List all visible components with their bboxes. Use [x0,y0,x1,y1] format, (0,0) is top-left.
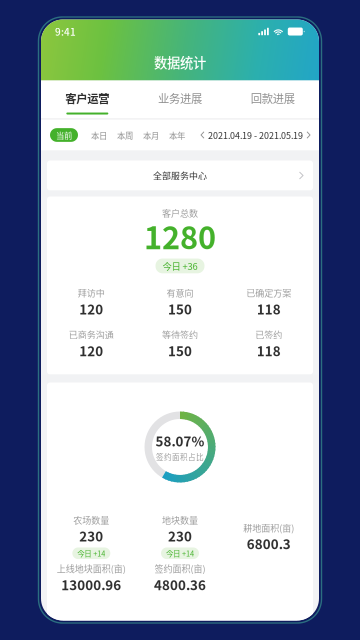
button[interactable]: 本年 [164,127,190,143]
staticText: 120 [79,343,103,358]
staticText: 1280 [144,218,216,253]
button[interactable]: 本周 [112,127,138,143]
staticText: 118 [257,301,281,316]
button[interactable]: 当前 [50,128,78,142]
staticText: 今日 +14 [166,549,194,557]
staticText: 本月 [143,130,159,140]
button[interactable]: 本日 [86,127,112,143]
staticText: 230 [168,528,192,543]
staticText: 拜访中 [78,287,105,298]
staticText: 上线地块面积(亩) [57,563,126,574]
staticText: 签约面积占比 [156,452,204,461]
staticText: 数据统计 [154,54,206,70]
staticText: 本周 [117,130,133,140]
staticText: 已确定方案 [246,287,291,298]
staticText: 有意向 [166,287,193,298]
staticText: 58.07% [155,433,204,448]
staticText: 本年 [169,130,185,140]
staticText: 当前 [56,130,72,140]
staticText: 签约面积(亩) [154,563,205,574]
staticText: 已商务沟通 [69,329,114,340]
staticText: 耕地面积(亩) [243,522,294,533]
staticText: 2021.04.19 - 2021.05.19 [208,130,303,140]
staticText: 4800.36 [154,577,206,592]
staticText: 120 [79,301,103,316]
staticText: 地块数量 [162,514,198,525]
staticText: 业务进展 [158,91,202,104]
staticText: 全部服务中心 [153,170,207,181]
staticText: 本日 [91,130,107,140]
staticText: 回款进展 [251,91,295,104]
button[interactable]: 客户运营 [41,80,134,118]
staticText: 13000.96 [61,577,121,592]
staticText: 230 [79,528,103,543]
staticText: 今日 +36 [162,260,197,271]
staticText: 客户运营 [65,91,109,104]
staticText: 118 [257,343,281,358]
button[interactable]: 本月 [138,127,164,143]
staticText: 6800.3 [247,536,291,551]
staticText: 已签约 [255,329,282,340]
staticText: 9:41 [55,26,76,37]
staticText: 150 [168,301,192,316]
staticText: 客户总数 [162,207,198,218]
button[interactable]: 回款进展 [226,80,319,118]
staticText: 农场数量 [73,514,109,525]
button[interactable]: 2021.04.19 - 2021.05.19 [201,126,310,144]
staticText: 今日 +14 [77,549,105,557]
button[interactable]: 全部服务中心 [47,160,313,190]
button[interactable]: 业务进展 [134,80,226,118]
staticText: 等待签约 [162,329,198,340]
staticText: 150 [168,343,192,358]
